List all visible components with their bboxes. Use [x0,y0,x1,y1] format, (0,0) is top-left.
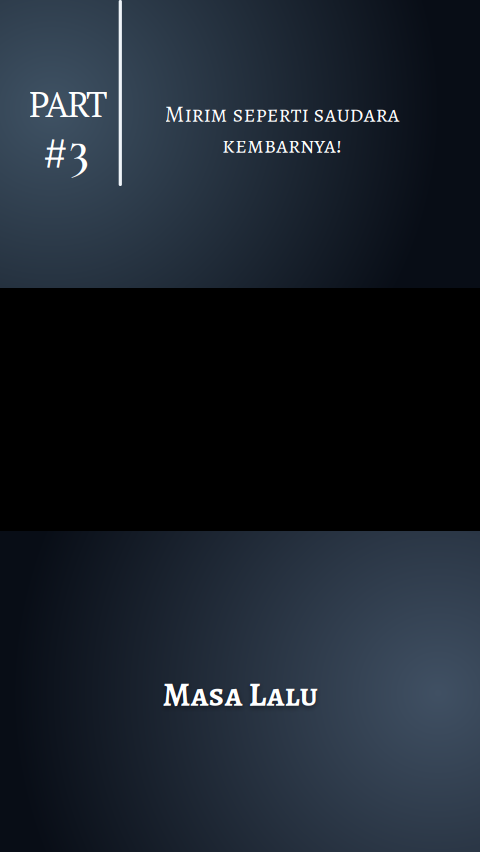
staticText: Mirim seperti saudara [164,98,399,130]
button[interactable]: PART [0,0,480,288]
staticText: Masa Lalu [162,672,317,717]
staticText: #3 [42,117,89,178]
button[interactable]: Masa Lalu [0,531,480,852]
staticText: PART [29,81,107,127]
staticText: kembarnya! [222,129,342,161]
